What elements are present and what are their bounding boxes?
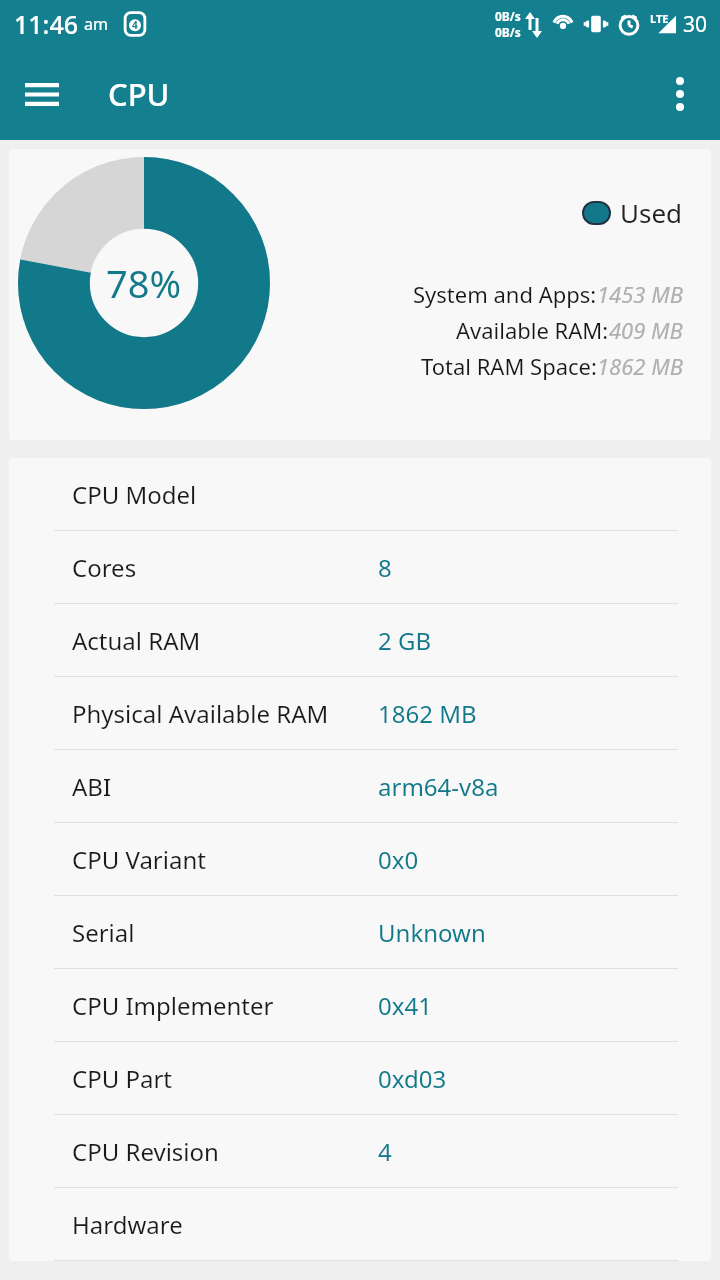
staticText: Serial bbox=[72, 916, 135, 949]
staticText: CPU bbox=[108, 73, 170, 115]
staticText: 0xd03 bbox=[378, 1062, 447, 1095]
staticText: 11:46 bbox=[14, 7, 79, 41]
staticText: CPU Revision bbox=[72, 1135, 219, 1168]
button[interactable]: CPU Model bbox=[9, 458, 711, 530]
staticText: Hardware bbox=[72, 1208, 183, 1241]
button[interactable]: ABI bbox=[9, 750, 711, 822]
button[interactable]: More options bbox=[656, 70, 704, 118]
staticText: CPU Model bbox=[72, 478, 197, 511]
staticText: 0B/s bbox=[495, 24, 521, 40]
staticText: LTE bbox=[650, 11, 669, 26]
staticText: Unknown bbox=[378, 916, 486, 949]
staticText: 4 bbox=[378, 1135, 392, 1168]
button[interactable]: Open navigation menu bbox=[18, 70, 66, 118]
staticText: 78% bbox=[106, 257, 182, 309]
button[interactable]: CPU Part bbox=[9, 1042, 711, 1114]
staticText: 2 GB bbox=[378, 624, 432, 657]
staticText: am bbox=[84, 13, 108, 35]
staticText: 1862 MB bbox=[597, 351, 683, 381]
staticText: 0x41 bbox=[378, 989, 432, 1022]
button[interactable]: Physical Available RAM bbox=[9, 677, 711, 749]
staticText: 0x0 bbox=[378, 843, 419, 876]
staticText: 409 MB bbox=[609, 315, 683, 345]
staticText: 8 bbox=[378, 551, 392, 584]
staticText: 0B/s bbox=[495, 8, 521, 24]
staticText: 4 bbox=[132, 18, 138, 32]
staticText: Available RAM: bbox=[456, 315, 609, 345]
staticText: CPU Implementer bbox=[72, 989, 274, 1022]
staticText: CPU Variant bbox=[72, 843, 206, 876]
staticText: 1453 MB bbox=[597, 279, 683, 309]
staticText: ABI bbox=[72, 770, 112, 803]
staticText: Physical Available RAM bbox=[72, 697, 329, 730]
button[interactable]: CPU Implementer bbox=[9, 969, 711, 1041]
staticText: 1862 MB bbox=[378, 697, 477, 730]
staticText: Cores bbox=[72, 551, 137, 584]
staticText: Total RAM Space: bbox=[421, 351, 597, 381]
staticText: Actual RAM bbox=[72, 624, 201, 657]
button[interactable]: Cores bbox=[9, 531, 711, 603]
button[interactable]: CPU Variant bbox=[9, 823, 711, 895]
button[interactable]: Actual RAM bbox=[9, 604, 711, 676]
staticText: 30 bbox=[683, 10, 708, 39]
staticText: System and Apps: bbox=[413, 279, 597, 309]
staticText: arm64-v8a bbox=[378, 770, 499, 803]
staticText: CPU Part bbox=[72, 1062, 173, 1095]
button[interactable]: CPU Revision bbox=[9, 1115, 711, 1187]
staticText: Used bbox=[620, 195, 683, 230]
button[interactable]: Hardware bbox=[9, 1188, 711, 1260]
button[interactable]: Serial bbox=[9, 896, 711, 968]
